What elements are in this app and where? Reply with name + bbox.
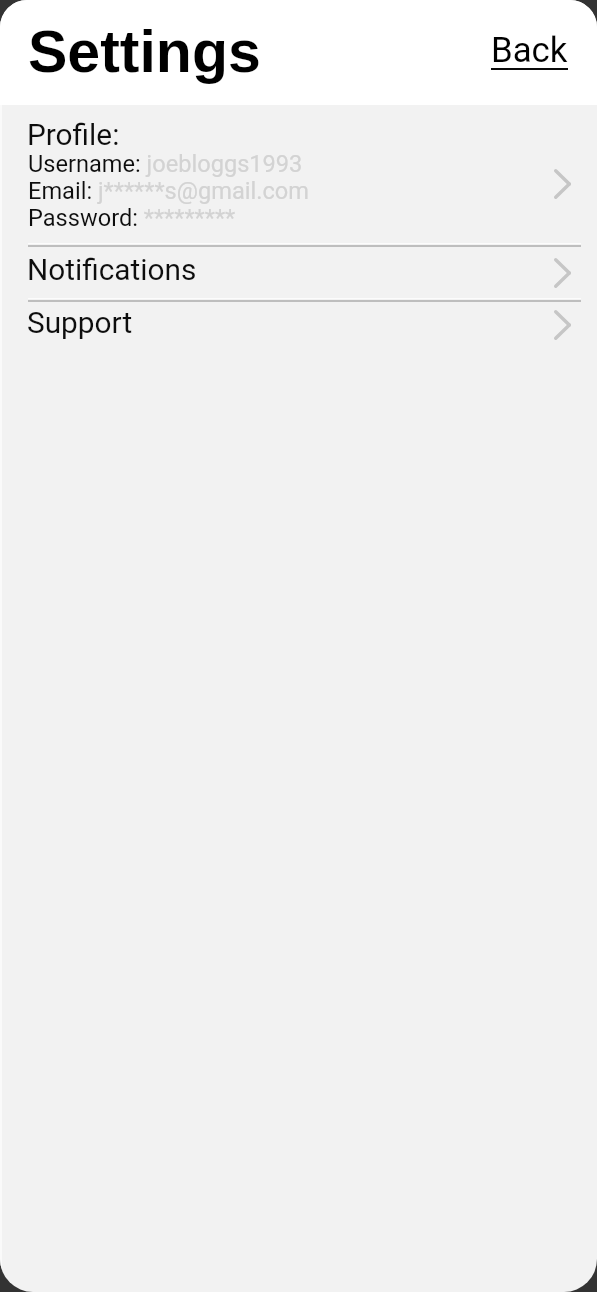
- staticText: Notifications: [27, 252, 197, 287]
- staticText: Profile:: [27, 117, 120, 152]
- staticText: Username: joebloggs1993: [28, 150, 303, 178]
- staticText: Password: *********: [28, 204, 236, 232]
- staticText: Support: [27, 305, 133, 340]
- other: Notifications: [554, 258, 571, 288]
- staticText: Settings: [28, 19, 261, 85]
- other: Support: [554, 310, 571, 340]
- button[interactable]: Back: [485, 22, 575, 80]
- staticText: Back: [491, 30, 568, 71]
- button[interactable]: Support: [0, 300, 597, 355]
- button[interactable]: Profile:: [0, 105, 597, 245]
- other: Profile: [554, 169, 571, 199]
- button[interactable]: Notifications: [0, 245, 597, 300]
- staticText: Email: j******s@gmail.com: [28, 177, 309, 205]
